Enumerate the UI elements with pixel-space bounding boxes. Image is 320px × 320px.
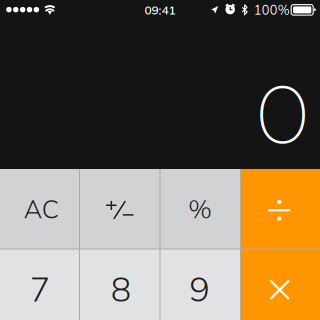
button[interactable]: 8 [80, 249, 159, 320]
button[interactable]: Divide [241, 169, 320, 248]
staticText: 7 [30, 267, 50, 310]
button[interactable]: AC [0, 169, 79, 248]
staticText: 0 [255, 64, 309, 164]
staticText: 8 [111, 267, 131, 310]
staticText: 09:41 [144, 2, 175, 18]
button[interactable]: 7 [0, 249, 79, 320]
button[interactable]: 9 [160, 249, 240, 320]
button[interactable]: % [160, 169, 240, 248]
staticText: 9 [189, 267, 209, 310]
staticText: AC [24, 193, 59, 225]
button[interactable]: Plus minus [80, 169, 159, 248]
button[interactable]: Multiply [241, 249, 320, 320]
staticText: % [188, 193, 212, 225]
staticText: 100% [254, 2, 290, 18]
